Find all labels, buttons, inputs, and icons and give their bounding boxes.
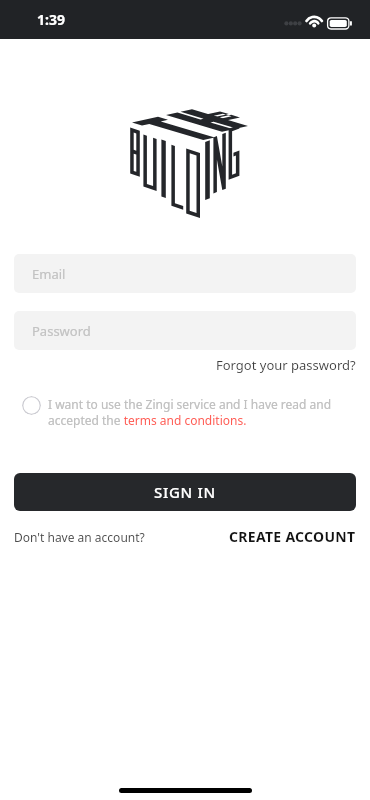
staticText: Password (32, 322, 91, 340)
button[interactable]: Password (14, 311, 356, 350)
button[interactable]: Email (14, 254, 356, 293)
button[interactable]: SIGN IN (14, 473, 356, 511)
button[interactable]: Don't have an account? (14, 529, 145, 545)
button[interactable]: Accept terms and conditions (22, 396, 41, 415)
staticText: 1:39 (37, 10, 65, 29)
button[interactable]: CREATE ACCOUNT (229, 527, 356, 546)
button[interactable]: I want to use the Zingi service and I ha… (48, 396, 350, 428)
staticText: SIGN IN (154, 482, 216, 502)
button[interactable]: Forgot your password? (216, 356, 356, 374)
staticText: Email (32, 265, 66, 283)
